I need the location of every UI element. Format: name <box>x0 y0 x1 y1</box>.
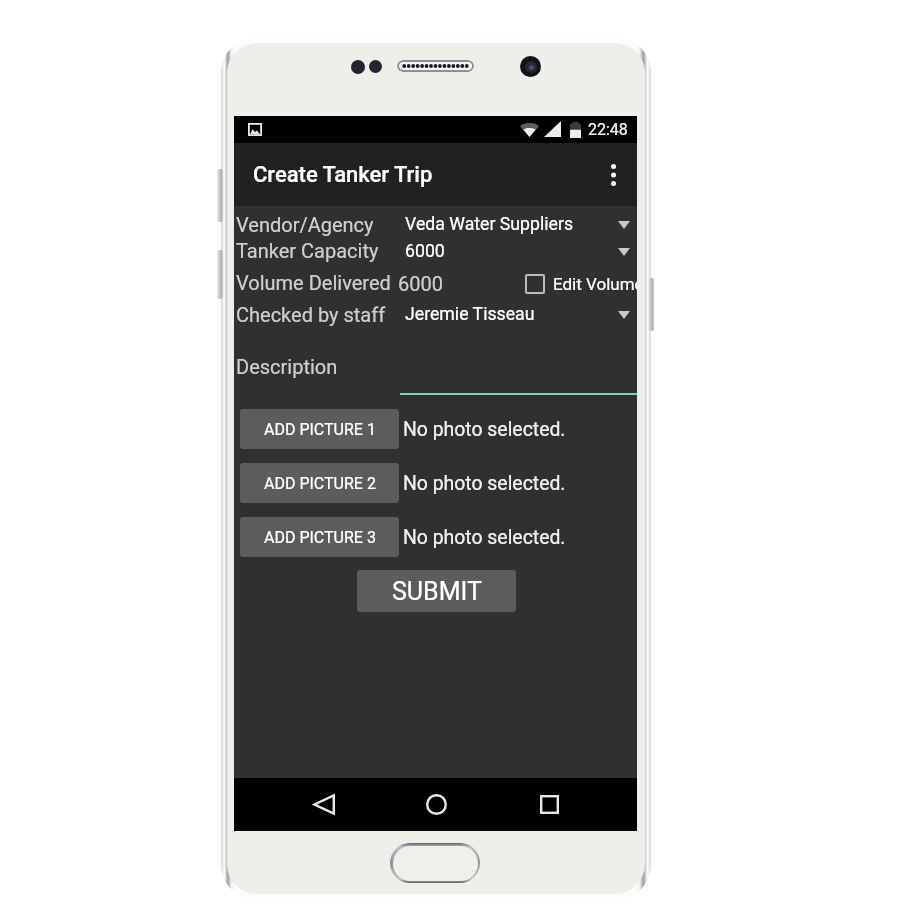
button[interactable]: ADD PICTURE 3 <box>240 517 399 557</box>
staticText: SUBMIT <box>392 577 482 606</box>
button[interactable]: Recents <box>521 778 577 831</box>
button[interactable]: SUBMIT <box>357 570 516 612</box>
staticText: 6000 <box>398 272 443 295</box>
button[interactable]: Volume up <box>217 169 223 222</box>
button[interactable]: Volume down <box>217 250 223 299</box>
button[interactable]: Home button <box>390 843 480 883</box>
button[interactable]: Vendor/Agency <box>236 213 374 236</box>
staticText: ADD PICTURE 3 <box>264 528 376 547</box>
button[interactable]: Jeremie Tisseau <box>400 302 637 332</box>
button[interactable]: Back <box>296 778 352 831</box>
staticText: No photo selected. <box>403 526 566 549</box>
staticText: 22:48 <box>588 120 628 139</box>
button[interactable]: Edit Volume <box>525 271 637 297</box>
button[interactable]: Power <box>648 278 654 331</box>
staticText: ADD PICTURE 1 <box>264 420 376 439</box>
staticText: No photo selected. <box>403 418 566 441</box>
button[interactable]: Home <box>408 778 464 831</box>
button[interactable]: Veda Water Suppliers <box>400 212 637 242</box>
button[interactable]: Description <box>236 355 338 378</box>
button[interactable]: More options <box>589 143 637 206</box>
button[interactable]: Volume Delivered <box>236 271 391 294</box>
staticText: Veda Water Suppliers <box>405 214 574 235</box>
staticText: ADD PICTURE 2 <box>264 474 376 493</box>
staticText: Jeremie Tisseau <box>405 304 535 325</box>
button[interactable]: ADD PICTURE 1 <box>240 409 399 449</box>
button[interactable]: ADD PICTURE 2 <box>240 463 399 503</box>
staticText: Create Tanker Trip <box>253 162 433 188</box>
button[interactable]: 6000 <box>400 239 637 269</box>
staticText: No photo selected. <box>403 472 566 495</box>
staticText: Edit Volume <box>553 274 637 294</box>
button[interactable]: Checked by staff <box>236 303 386 326</box>
button[interactable]: Tanker Capacity <box>236 239 379 262</box>
staticText: 6000 <box>405 241 445 262</box>
